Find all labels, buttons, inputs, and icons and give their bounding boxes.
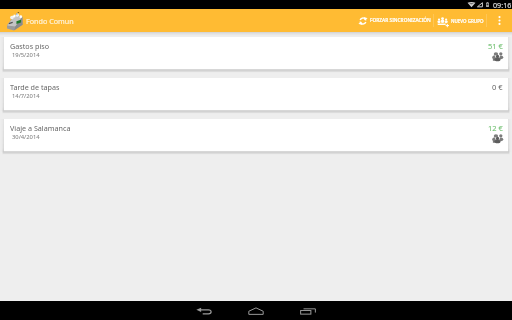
staticText: Viaje a Salamanca (10, 123, 71, 133)
button[interactable]: Gastos piso (4, 37, 508, 69)
staticText: 30/4/2014 (12, 133, 40, 141)
staticText: 0 € (492, 82, 503, 92)
button[interactable]: Home (230, 301, 282, 320)
staticText: Fondo Comun (26, 16, 74, 26)
staticText: 19/5/2014 (12, 51, 40, 59)
staticText: Tarde de tapas (10, 82, 60, 92)
staticText: FORZAR SINCRONIZACIÓN (370, 17, 431, 24)
button[interactable]: Viaje a Salamanca (4, 119, 508, 151)
staticText: 09:16 (493, 0, 512, 9)
staticText: 12 € (488, 123, 503, 133)
staticText: Gastos piso (10, 41, 50, 51)
staticText: NUEVO GRUPO (451, 18, 484, 24)
button[interactable]: Tarde de tapas (4, 78, 508, 110)
button[interactable]: More options (487, 9, 512, 32)
button[interactable]: NUEVO GRUPO (434, 9, 486, 32)
button[interactable]: Back (178, 301, 230, 320)
staticText: 51 € (488, 41, 503, 51)
staticText: 14/7/2014 (12, 92, 40, 100)
button[interactable]: FORZAR SINCRONIZACIÓN (358, 9, 433, 32)
button[interactable]: Recent apps (282, 301, 334, 320)
